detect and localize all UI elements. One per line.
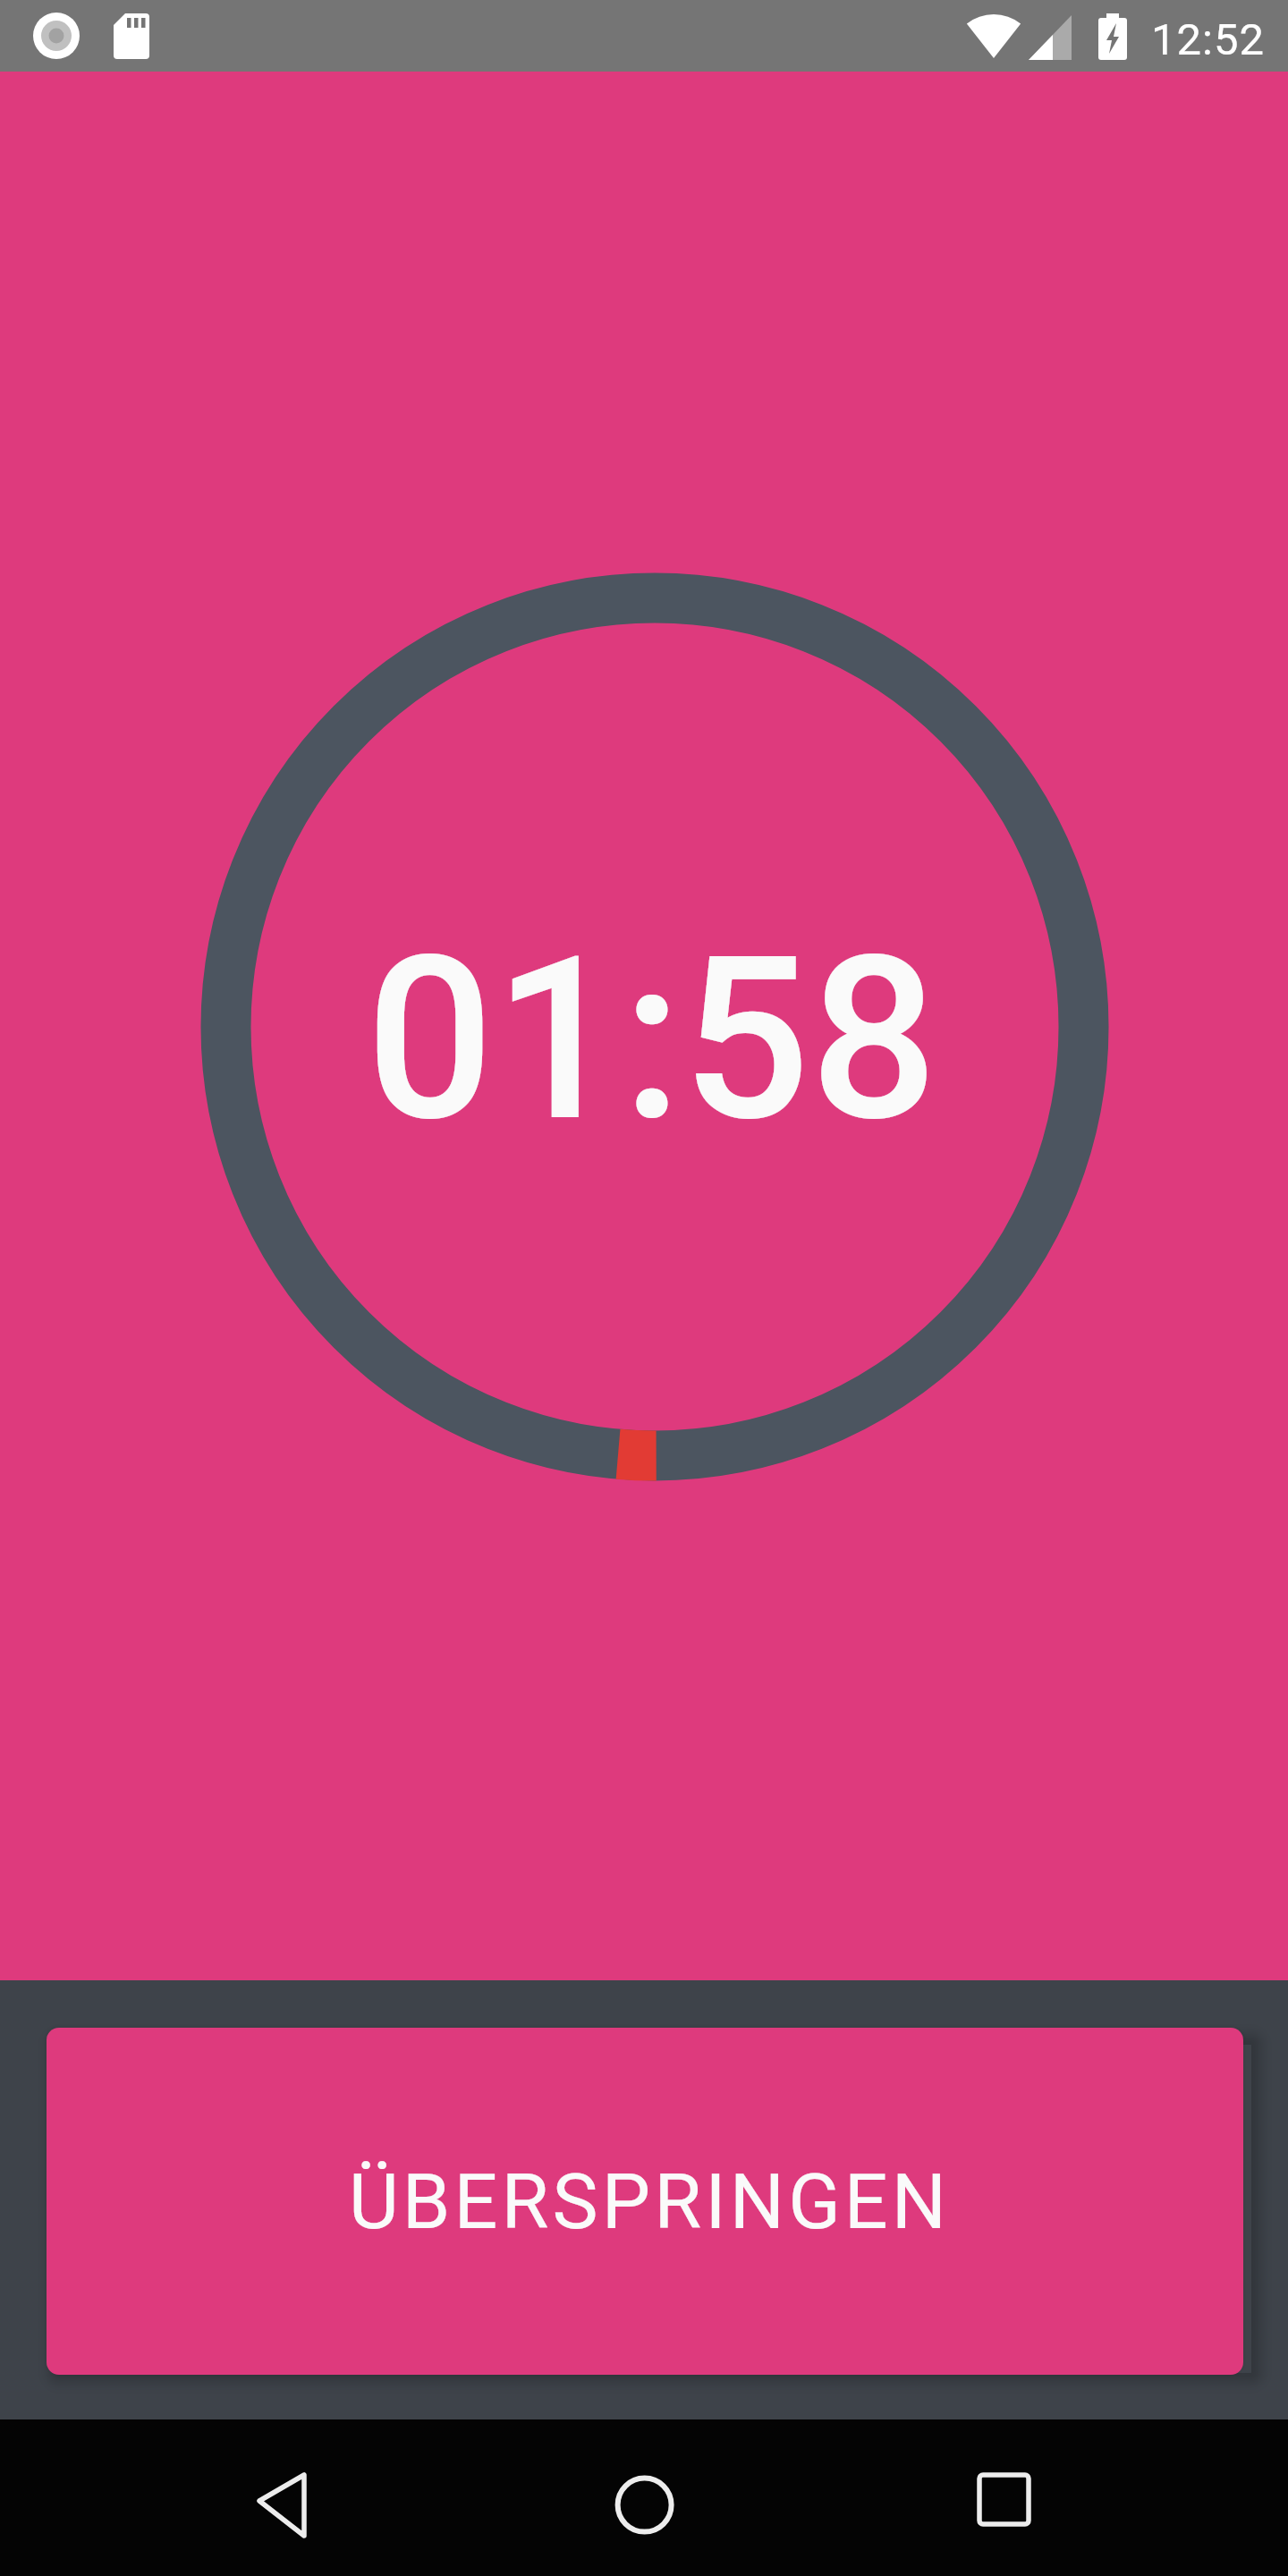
staticText: ÜBERSPRINGEN xyxy=(349,2157,951,2247)
button[interactable] xyxy=(942,2437,1067,2563)
staticText: 01:58 xyxy=(366,908,938,1172)
button[interactable] xyxy=(224,2437,349,2563)
button[interactable] xyxy=(581,2437,707,2563)
staticText: 12:52 xyxy=(1151,14,1266,65)
button[interactable]: ÜBERSPRINGEN xyxy=(47,2028,1243,2375)
